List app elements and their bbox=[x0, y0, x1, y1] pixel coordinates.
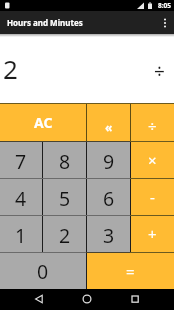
staticText: 6 bbox=[103, 185, 115, 212]
button[interactable]: 4 bbox=[0, 179, 42, 215]
button[interactable]: + bbox=[131, 216, 174, 252]
button[interactable]: 1 bbox=[0, 216, 42, 252]
button[interactable]: × bbox=[131, 142, 174, 178]
button[interactable]: 3 bbox=[87, 216, 130, 252]
staticText: ÷ bbox=[154, 58, 165, 84]
staticText: 5 bbox=[59, 185, 71, 212]
button[interactable]: ÷ bbox=[131, 104, 174, 141]
staticText: 3 bbox=[103, 222, 115, 249]
staticText: AC bbox=[34, 113, 53, 132]
staticText: - bbox=[150, 187, 155, 207]
button[interactable]: 0 bbox=[0, 253, 86, 289]
button[interactable] bbox=[78, 290, 95, 307]
button[interactable]: 7 bbox=[0, 142, 42, 178]
staticText: 2 bbox=[3, 51, 18, 86]
button[interactable]: AC bbox=[0, 104, 86, 141]
staticText: 9 bbox=[103, 148, 115, 175]
button[interactable]: 9 bbox=[87, 142, 130, 178]
button[interactable]: 2 bbox=[43, 216, 86, 252]
staticText: 4 bbox=[15, 185, 27, 212]
staticText: 8:05 bbox=[158, 1, 171, 10]
staticText: « bbox=[105, 119, 113, 135]
staticText: 7 bbox=[15, 148, 27, 175]
staticText: = bbox=[126, 261, 135, 281]
staticText: 1 bbox=[15, 222, 27, 249]
button[interactable]: 5 bbox=[43, 179, 86, 215]
staticText: × bbox=[148, 150, 157, 170]
staticText: ÷ bbox=[148, 116, 157, 136]
staticText: 0 bbox=[37, 258, 49, 285]
button[interactable]: = bbox=[87, 253, 174, 289]
staticText: + bbox=[148, 224, 157, 244]
button[interactable]: - bbox=[131, 179, 174, 215]
button[interactable]: 6 bbox=[87, 179, 130, 215]
staticText: Hours and Minutes bbox=[7, 17, 83, 28]
button[interactable]: 8 bbox=[43, 142, 86, 178]
staticText: 8 bbox=[59, 148, 71, 175]
button[interactable] bbox=[152, 12, 174, 34]
button[interactable]: « bbox=[87, 104, 130, 141]
staticText: 2 bbox=[59, 222, 71, 249]
button[interactable] bbox=[126, 290, 143, 307]
button[interactable] bbox=[30, 290, 47, 307]
